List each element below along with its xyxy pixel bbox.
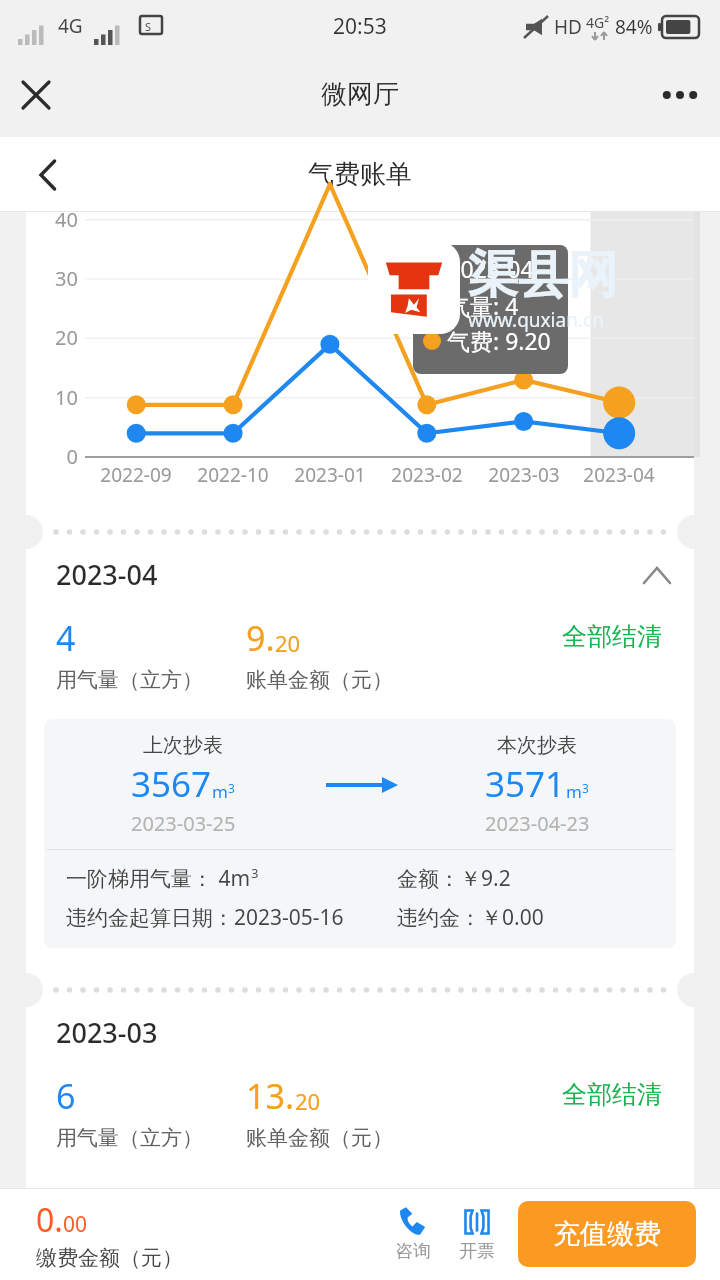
staticText: S [145, 19, 152, 34]
staticText: 3 [251, 864, 259, 882]
staticText: 2023-03 [190, 462, 720, 488]
staticText: 用气量（立方） [56, 667, 203, 693]
staticText: 13. [246, 1073, 295, 1119]
staticText: 20:53 [333, 12, 387, 41]
staticText: m [212, 780, 228, 803]
button[interactable]: Back [22, 149, 74, 201]
staticText: 2023-04 [56, 556, 158, 593]
staticText: 气量: 4 [447, 290, 519, 321]
staticText: 20 [34, 324, 78, 351]
button[interactable]: 2023-03 [26, 1010, 694, 1151]
button[interactable]: 2023-04 [26, 552, 694, 970]
staticText: HD [554, 14, 582, 40]
staticText: 2023-02 [93, 462, 720, 488]
staticText: 3 [582, 780, 589, 796]
staticText: 2023-04-23 [485, 810, 590, 837]
staticText: 金额：￥9.2 [397, 864, 511, 893]
staticText: 缴费金额（元） [36, 1245, 183, 1271]
button[interactable]: Close [10, 69, 62, 121]
staticText: 开票 [459, 1240, 495, 1263]
staticText: 40 [34, 206, 78, 233]
staticText: 20 [275, 628, 301, 658]
staticText: 9. [246, 615, 275, 661]
staticText: 2023-03 [56, 1014, 158, 1051]
staticText: 0 [34, 443, 78, 470]
staticText: 本次抄表 [497, 733, 577, 758]
staticText: m [566, 780, 582, 803]
staticText: 违约金：￥0.00 [397, 903, 544, 932]
staticText: 30 [34, 265, 78, 292]
staticText: 渠县网 [468, 244, 618, 307]
staticText: 2023-03-25 [131, 810, 236, 837]
staticText: 账单金额（元） [246, 667, 393, 693]
staticText: 全部结清 [562, 621, 662, 652]
button[interactable]: More options [654, 69, 706, 121]
staticText: 3567 [131, 760, 212, 808]
staticText: 20 [295, 1086, 321, 1116]
staticText: 4G² [586, 13, 610, 32]
staticText: 微网厅 [321, 78, 399, 111]
staticText: 2022-09 [0, 462, 470, 488]
button[interactable]: 开票 [448, 1202, 506, 1267]
staticText: 咨询 [395, 1240, 431, 1263]
button[interactable]: 充值缴费 [518, 1201, 696, 1267]
staticText: 上次抄表 [143, 733, 223, 758]
staticText: 4G [58, 13, 83, 39]
staticText: 气费账单 [308, 158, 412, 191]
staticText: 用气量（立方） [56, 1125, 203, 1151]
staticText: 84% [615, 14, 653, 40]
staticText: 违约金起算日期：2023-05-16 [66, 903, 344, 932]
staticText: 一阶梯用气量： 4m [66, 864, 251, 893]
button[interactable]: 咨询 [384, 1202, 442, 1267]
staticText: 0. [36, 1198, 63, 1242]
staticText: 2023-04 [423, 253, 558, 284]
staticText: 3571 [485, 760, 566, 808]
staticText: www.quxian.cn [468, 307, 604, 333]
staticText: 2023-01 [0, 462, 664, 488]
staticText: 2023-04 [285, 462, 720, 488]
staticText: 充值缴费 [553, 1217, 661, 1251]
staticText: 4 [56, 615, 76, 661]
staticText: 2022-10 [0, 462, 567, 488]
staticText: 气费: 9.20 [447, 325, 551, 356]
staticText: 3 [228, 780, 235, 796]
staticText: 账单金额（元） [246, 1125, 393, 1151]
staticText: 6 [56, 1073, 76, 1119]
staticText: 全部结清 [562, 1079, 662, 1110]
staticText: 10 [34, 384, 78, 411]
staticText: 00 [63, 1210, 88, 1239]
